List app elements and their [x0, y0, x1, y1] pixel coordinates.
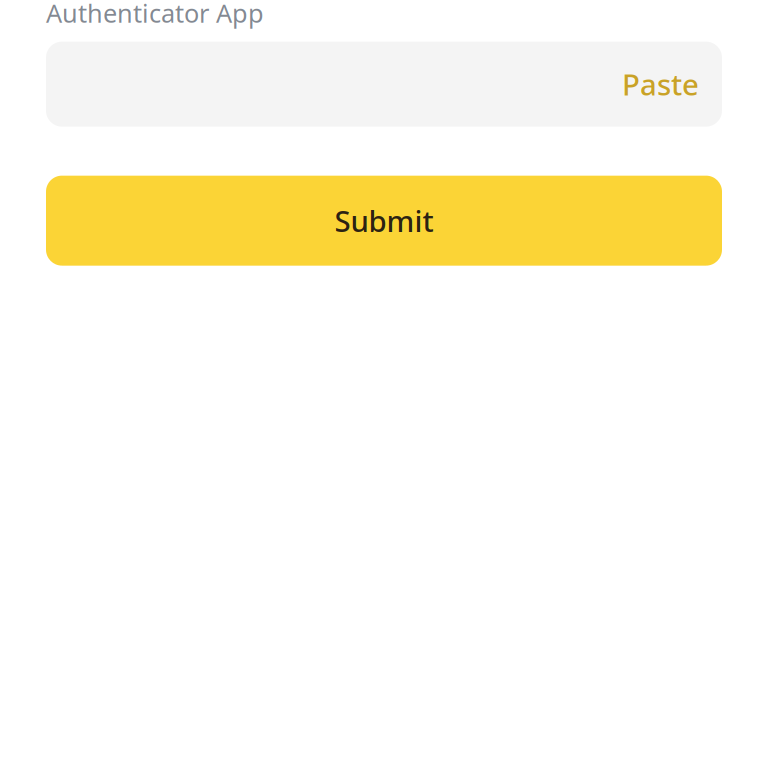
staticText: Paste [622, 65, 699, 104]
staticText: Authenticator App [46, 0, 264, 30]
staticText: Submit [334, 201, 433, 240]
button[interactable]: Submit [46, 176, 722, 266]
button[interactable]: Paste [598, 51, 699, 118]
